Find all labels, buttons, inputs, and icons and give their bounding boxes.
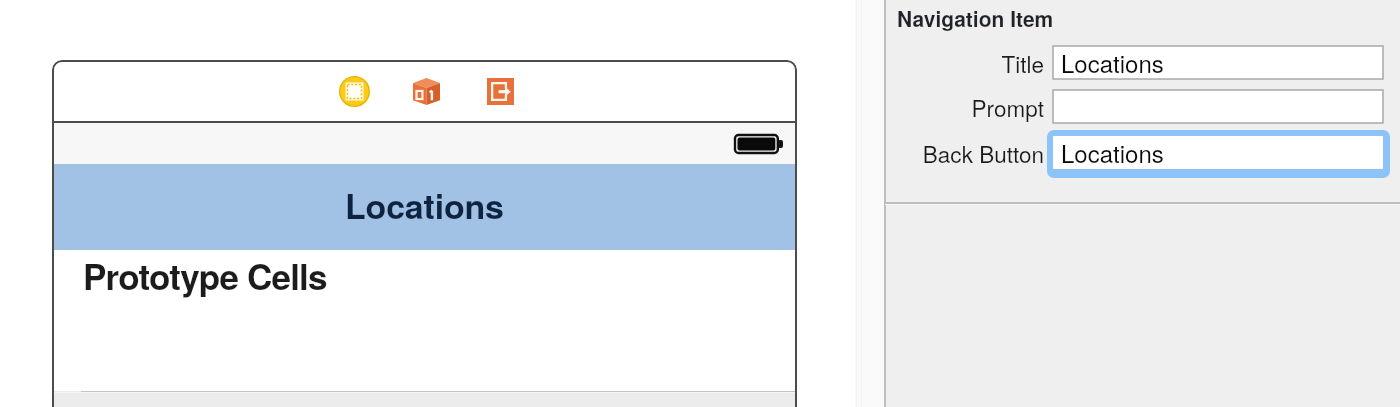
- staticText: Prototype Cells: [83, 251, 327, 301]
- button[interactable]: View controller scene: [336, 73, 372, 109]
- button[interactable]: First responder: [408, 73, 444, 109]
- staticText: Locations: [1061, 45, 1164, 78]
- button[interactable]: Locations: [52, 164, 797, 250]
- staticText: Prompt: [879, 91, 1044, 123]
- button[interactable]: Exit: [482, 73, 518, 109]
- button[interactable]: [1053, 90, 1383, 123]
- staticText: Title: [879, 47, 1044, 79]
- button[interactable]: Prototype Cells: [52, 250, 797, 391]
- staticText: Locations: [345, 181, 504, 230]
- button[interactable]: Locations: [1053, 46, 1383, 79]
- staticText: Navigation Item: [897, 3, 1054, 33]
- button[interactable]: Locations: [1053, 136, 1383, 169]
- staticText: Locations: [1061, 135, 1164, 168]
- staticText: Back Button: [879, 137, 1044, 169]
